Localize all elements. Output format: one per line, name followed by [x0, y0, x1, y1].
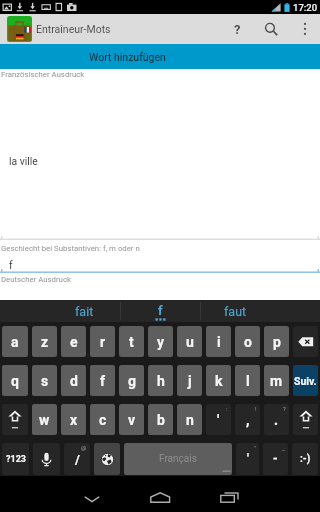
- button[interactable]: i: [206, 326, 231, 357]
- staticText: /: [75, 452, 80, 467]
- staticText: t: [129, 334, 134, 350]
- staticText: .: [274, 412, 279, 428]
- button[interactable]: r: [90, 326, 115, 357]
- button[interactable]: Shift: [2, 404, 28, 435]
- button[interactable]: fait: [48, 300, 120, 322]
- staticText: ?: [234, 22, 241, 37]
- staticText: d: [70, 373, 78, 389]
- staticText: f: [158, 303, 163, 318]
- button[interactable]: u: [177, 326, 202, 357]
- staticText: q: [11, 373, 19, 389]
- staticText: c: [99, 412, 107, 428]
- staticText: m: [270, 373, 283, 389]
- staticText: 17:20: [293, 2, 318, 13]
- button[interactable]: g: [119, 365, 144, 396]
- button[interactable]: k: [206, 365, 231, 396]
- button[interactable]: Dash: [263, 443, 288, 475]
- button[interactable]: c: [90, 404, 115, 435]
- staticText: j: [188, 373, 192, 389]
- staticText: Geschlecht bei Substantiven: f, m oder n: [1, 244, 140, 253]
- staticText: ': [217, 412, 220, 428]
- staticText: Suiv.: [294, 375, 317, 387]
- button[interactable]: Slash: [64, 443, 90, 475]
- staticText: a: [11, 334, 19, 350]
- staticText: !: [255, 405, 257, 412]
- button[interactable]: Suiv.: [293, 365, 318, 396]
- button[interactable]: Home: [138, 476, 183, 512]
- button[interactable]: x: [61, 404, 86, 435]
- button[interactable]: Voice input: [33, 443, 60, 475]
- button[interactable]: !: [235, 404, 260, 435]
- button[interactable]: Space: [124, 443, 232, 475]
- button[interactable]: y: [148, 326, 173, 357]
- staticText: Deutscher Ausdruck: [1, 275, 71, 284]
- button[interactable]: Emoticons: [292, 443, 318, 475]
- staticText: b: [157, 412, 165, 428]
- button[interactable]: f: [90, 365, 115, 396]
- button[interactable]: Change language: [94, 443, 120, 475]
- staticText: f: [100, 373, 106, 389]
- button[interactable]: h: [148, 365, 173, 396]
- staticText: Französischer Ausdruck: [1, 70, 85, 79]
- button[interactable]: Recent apps: [207, 476, 252, 512]
- staticText: n: [186, 412, 194, 428]
- staticText: h: [157, 373, 165, 389]
- button[interactable]: Shift: [293, 404, 318, 435]
- button[interactable]: Delete: [293, 326, 318, 357]
- button[interactable]: s: [32, 365, 57, 396]
- staticText: faut: [224, 304, 247, 319]
- button[interactable]: Wort hinzufügen: [0, 44, 320, 69]
- button[interactable]: faut: [201, 300, 270, 322]
- button[interactable]: j: [177, 365, 202, 396]
- button[interactable]: w: [32, 404, 57, 435]
- staticText: -: [273, 452, 278, 466]
- staticText: ": [254, 444, 256, 451]
- staticText: p: [273, 334, 281, 350]
- staticText: x: [70, 412, 78, 428]
- staticText: Français: [159, 453, 197, 465]
- button[interactable]: b: [148, 404, 173, 435]
- button[interactable]: Apostrophe: [236, 443, 259, 475]
- staticText: l: [246, 373, 250, 389]
- button[interactable]: d: [61, 365, 86, 396]
- staticText: _: [282, 444, 285, 451]
- staticText: :-): [300, 453, 311, 465]
- button[interactable]: z: [32, 326, 57, 357]
- staticText: k: [215, 373, 223, 389]
- button[interactable]: o: [235, 326, 260, 357]
- button[interactable]: Symbols: [2, 443, 29, 475]
- staticText: ': [247, 452, 249, 466]
- staticText: ?: [283, 405, 286, 412]
- staticText: u: [186, 334, 194, 350]
- button[interactable]: t: [119, 326, 144, 357]
- button[interactable]: m: [264, 365, 289, 396]
- button[interactable]: l: [235, 365, 260, 396]
- button[interactable]: a: [2, 326, 28, 357]
- staticText: :: [226, 405, 228, 412]
- button[interactable]: Hide keyboard: [70, 476, 115, 512]
- staticText: s: [41, 373, 49, 389]
- button[interactable]: f: [121, 300, 200, 322]
- button[interactable]: f: [9, 259, 13, 271]
- staticText: v: [128, 412, 136, 428]
- button[interactable]: q: [2, 365, 28, 396]
- button[interactable]: ?: [264, 404, 289, 435]
- button[interactable]: :: [206, 404, 231, 435]
- staticText: w: [39, 412, 50, 428]
- staticText: g: [128, 373, 136, 389]
- staticText: e: [70, 334, 78, 350]
- button[interactable]: p: [264, 326, 289, 357]
- staticText: Wort hinzufügen: [89, 51, 166, 63]
- staticText: ?123: [6, 454, 26, 465]
- staticText: i: [217, 334, 221, 350]
- button[interactable]: v: [119, 404, 144, 435]
- button[interactable]: n: [177, 404, 202, 435]
- button[interactable]: la ville: [9, 155, 38, 167]
- staticText: r: [100, 334, 106, 350]
- staticText: @: [81, 444, 87, 451]
- staticText: o: [244, 334, 252, 350]
- button[interactable]: More options: [289, 14, 320, 44]
- button[interactable]: Search: [254, 14, 289, 44]
- button[interactable]: e: [61, 326, 86, 357]
- button[interactable]: Help: [220, 14, 254, 44]
